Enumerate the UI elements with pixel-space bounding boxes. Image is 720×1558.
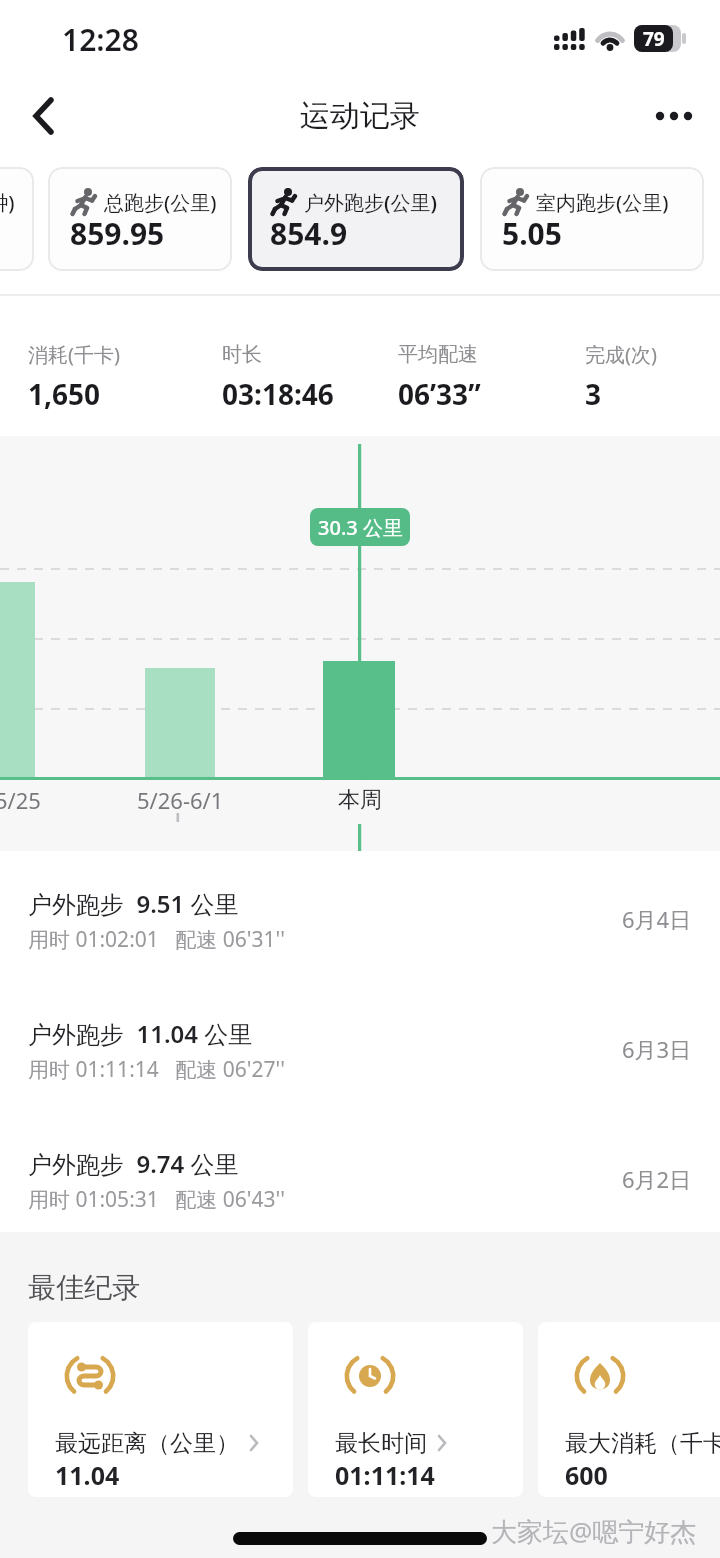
- button[interactable]: 户外跑步(公里): [248, 167, 464, 271]
- staticText: 12:28: [62, 19, 139, 60]
- button[interactable]: [24, 92, 72, 140]
- staticText: 30.3 公里: [318, 514, 403, 541]
- staticText: 消耗(千卡): [28, 341, 120, 368]
- staticText: 5/25: [0, 785, 41, 815]
- button[interactable]: 室内跑步(公里): [480, 167, 704, 271]
- staticText: 平均配速: [398, 342, 478, 367]
- button[interactable]: 户外跑步 11.04 公里: [0, 992, 720, 1112]
- staticText: 完成(次): [585, 341, 657, 368]
- staticText: 5.05: [502, 213, 562, 253]
- staticText: 最长时间: [335, 1429, 427, 1458]
- staticText: 室内跑步(公里): [536, 189, 669, 216]
- staticText: 79: [643, 26, 665, 52]
- staticText: 时长: [222, 342, 262, 367]
- staticText: 户外跑步 9.74 公里: [28, 1147, 239, 1180]
- staticText: 600: [565, 1458, 608, 1492]
- staticText: 用时 01:11:14 配速 06'27'': [28, 1055, 285, 1084]
- staticText: 854.9: [270, 213, 348, 253]
- staticText: 户外跑步 11.04 公里: [28, 1017, 253, 1050]
- staticText: 时长(分钟): [0, 189, 15, 216]
- button[interactable]: 总跑步(公里): [48, 167, 232, 271]
- staticText: 户外跑步 9.51 公里: [28, 887, 239, 920]
- button[interactable]: 户外跑步 9.74 公里: [0, 1122, 720, 1242]
- staticText: 6月3日: [622, 1034, 692, 1064]
- staticText: 3: [585, 375, 602, 413]
- staticText: 大家坛@嗯宁好杰: [491, 1513, 697, 1549]
- staticText: 01:11:14: [335, 1458, 435, 1492]
- staticText: 6月2日: [622, 1164, 692, 1194]
- staticText: 最远距离（公里）: [55, 1429, 239, 1458]
- button[interactable]: [648, 92, 700, 140]
- staticText: 运动记录: [300, 97, 420, 135]
- button[interactable]: [0, 167, 34, 271]
- staticText: 用时 01:05:31 配速 06'43'': [28, 1185, 285, 1214]
- staticText: 06’33”: [398, 375, 481, 413]
- staticText: 总跑步(公里): [104, 189, 217, 216]
- button[interactable]: 户外跑步 9.51 公里: [0, 862, 720, 982]
- staticText: 最佳纪录: [28, 1270, 140, 1305]
- staticText: 1,650: [28, 375, 101, 413]
- staticText: 5/26-6/1: [137, 785, 224, 815]
- staticText: 最大消耗（千卡）: [565, 1429, 720, 1458]
- button[interactable]: 最远距离（公里）: [28, 1322, 293, 1497]
- staticText: 6月4日: [622, 904, 692, 934]
- staticText: 户外跑步(公里): [304, 189, 437, 216]
- staticText: 本周: [338, 786, 382, 814]
- button[interactable]: 最长时间: [308, 1322, 523, 1497]
- staticText: 11.04: [55, 1458, 120, 1492]
- button[interactable]: 最大消耗（千卡）: [538, 1322, 720, 1497]
- staticText: 859.95: [70, 213, 165, 253]
- staticText: 03:18:46: [222, 375, 334, 413]
- staticText: 用时 01:02:01 配速 06'31'': [28, 925, 285, 954]
